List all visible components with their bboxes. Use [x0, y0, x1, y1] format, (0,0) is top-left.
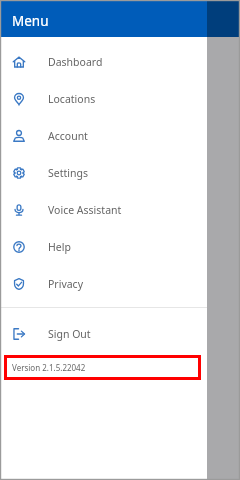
staticText: Privacy	[48, 277, 84, 291]
staticText: Sign Out	[48, 327, 91, 341]
staticText: Locations	[48, 92, 96, 106]
button[interactable]: Privacy	[0, 265, 207, 302]
button[interactable]: Sign Out	[0, 315, 207, 352]
button[interactable]: Settings	[0, 154, 207, 191]
staticText: Help	[48, 240, 71, 254]
button[interactable]: Dashboard	[0, 43, 207, 80]
staticText: Menu	[12, 12, 49, 30]
button[interactable]: Locations	[0, 80, 207, 117]
staticText: Voice Assistant	[48, 203, 122, 217]
staticText: Version 2.1.5.22042	[12, 362, 86, 373]
staticText: Settings	[48, 166, 88, 180]
staticText: Dashboard	[48, 55, 103, 69]
button[interactable]: Account	[0, 117, 207, 154]
button[interactable]: Help	[0, 228, 207, 265]
button[interactable]: Voice Assistant	[0, 191, 207, 228]
staticText: Account	[48, 129, 88, 143]
